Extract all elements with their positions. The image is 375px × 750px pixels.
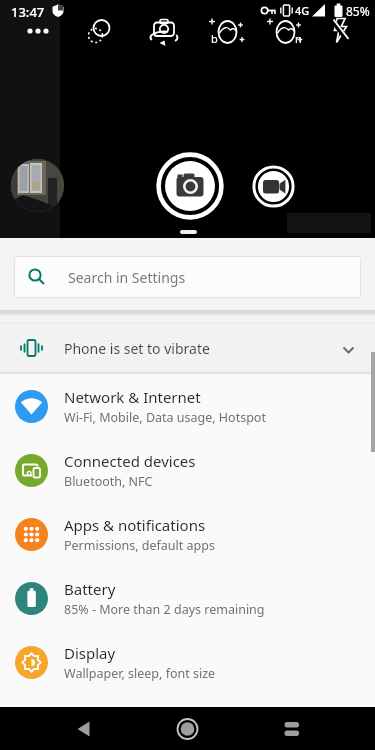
button[interactable] [68,715,98,743]
staticText: Network & Internet [64,387,201,407]
staticText: Apps & notifications [64,515,206,535]
staticText: 4G [295,3,310,18]
button[interactable]: Apps & notifications [0,502,375,566]
button[interactable]: Display [0,630,375,694]
staticText: Battery [64,579,116,599]
button[interactable]: Network & Internet [0,374,375,438]
staticText: 85% [346,3,370,19]
staticText: Phone is set to vibrate [64,339,210,358]
button[interactable] [278,715,306,743]
staticText: Search in Settings [68,268,186,287]
staticText: Bluetooth, NFC [64,473,153,490]
button[interactable] [172,714,203,744]
button[interactable] [252,165,295,208]
staticText: Permissions, default apps [64,537,215,554]
staticText: Wallpaper, sleep, font size [64,665,216,682]
button[interactable]: Connected devices [0,438,375,502]
button[interactable] [11,159,64,212]
button[interactable]: Battery [0,566,375,630]
staticText: Connected devices [64,451,196,471]
button[interactable] [156,152,224,220]
staticText: Display [64,643,116,663]
button[interactable]: Search in Settings [14,256,361,298]
staticText: 13:47 [11,3,45,21]
staticText: Wi-Fi, Mobile, Data usage, Hotspot [64,409,266,426]
staticText: b [211,31,218,46]
button[interactable]: Phone is set to vibrate [0,323,375,372]
staticText: n [295,31,302,46]
staticText: 85% - More than 2 days remaining [64,601,265,618]
